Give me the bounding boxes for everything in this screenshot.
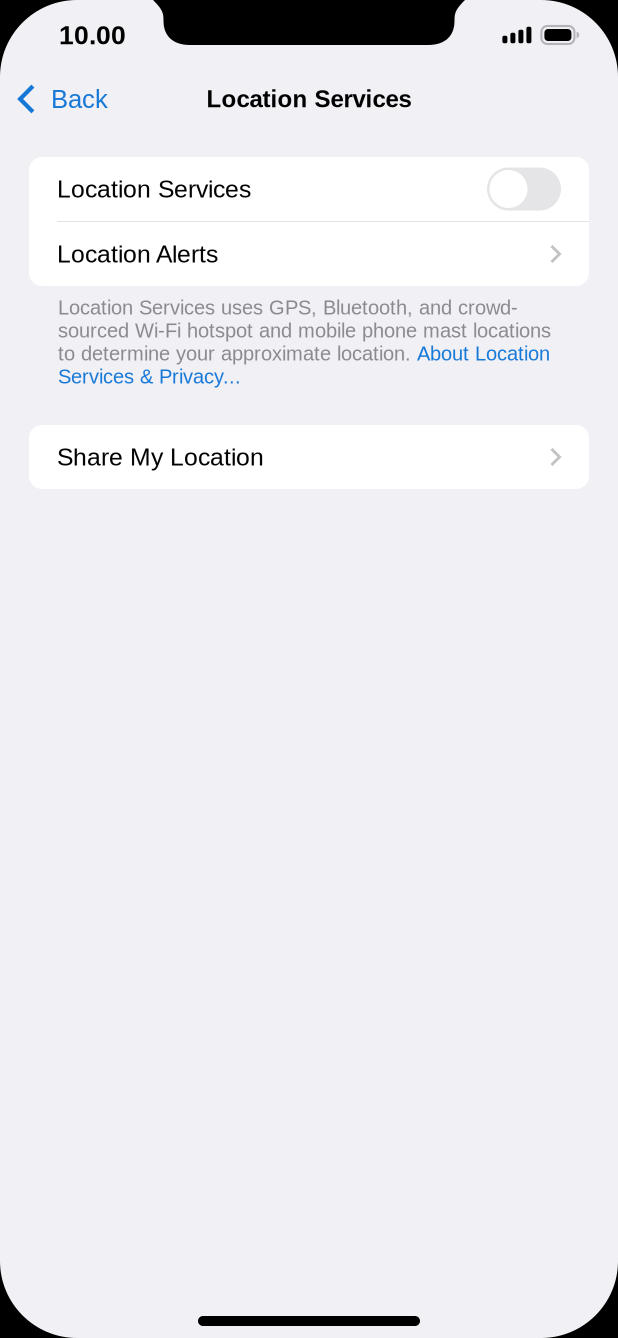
staticText: Share My Location <box>57 443 264 471</box>
button[interactable]: About Location <box>417 342 550 365</box>
staticText: Location Services <box>206 86 411 112</box>
button[interactable]: Location Alerts <box>29 222 589 286</box>
staticText: Back <box>51 85 108 113</box>
button[interactable]: Back <box>0 71 122 127</box>
staticText: Location Services <box>57 175 251 203</box>
staticText: About Location <box>417 342 550 365</box>
staticText: Location Alerts <box>57 240 218 268</box>
staticText: to determine your approximate location. <box>58 342 417 365</box>
button[interactable]: Location Services <box>29 157 589 221</box>
button[interactable]: Services & Privacy... <box>58 365 578 388</box>
staticText: Location Services uses GPS, Bluetooth, a… <box>58 296 518 319</box>
staticText: 10.00 <box>59 20 126 50</box>
button[interactable]: Share My Location <box>29 425 589 489</box>
staticText: Services & Privacy... <box>58 365 241 388</box>
staticText: sourced Wi-Fi hotspot and mobile phone m… <box>58 319 551 342</box>
